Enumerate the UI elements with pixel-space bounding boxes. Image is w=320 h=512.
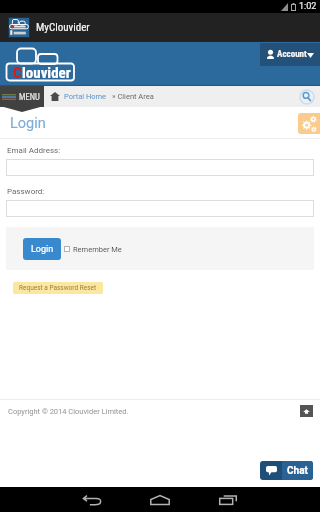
staticText: 1:02 (299, 1, 317, 12)
button[interactable]: Back (68, 487, 116, 512)
button[interactable]: Back to top (300, 405, 313, 417)
staticText: Login (31, 244, 54, 255)
button[interactable]: Chat (260, 461, 313, 480)
staticText: Remember Me (73, 245, 122, 254)
button[interactable]: Login (23, 238, 61, 260)
staticText: Password: (7, 187, 45, 196)
staticText: Chat (287, 465, 308, 477)
staticText: MyClouvider (36, 21, 90, 34)
staticText: louvider (22, 64, 71, 82)
staticText: Email Address: (7, 146, 61, 155)
staticText: » Client Area (112, 92, 154, 101)
button[interactable]: MENU (0, 86, 44, 107)
staticText: Request a Password Reset (19, 284, 97, 292)
button[interactable]: Recents (204, 487, 252, 512)
staticText: Login (10, 115, 46, 132)
staticText: Account (277, 49, 307, 60)
button[interactable]: Request a Password Reset (13, 282, 103, 294)
button[interactable]: Settings (298, 113, 320, 134)
button[interactable]: Account (260, 43, 320, 66)
staticText: MENU (19, 92, 40, 102)
staticText: Copyright © 2014 Clouvider Limited. (8, 407, 129, 416)
button[interactable]: Portal Home (64, 92, 107, 101)
staticText: C (13, 64, 22, 82)
button[interactable]: Home (136, 487, 184, 512)
button[interactable]: Search (299, 89, 315, 105)
